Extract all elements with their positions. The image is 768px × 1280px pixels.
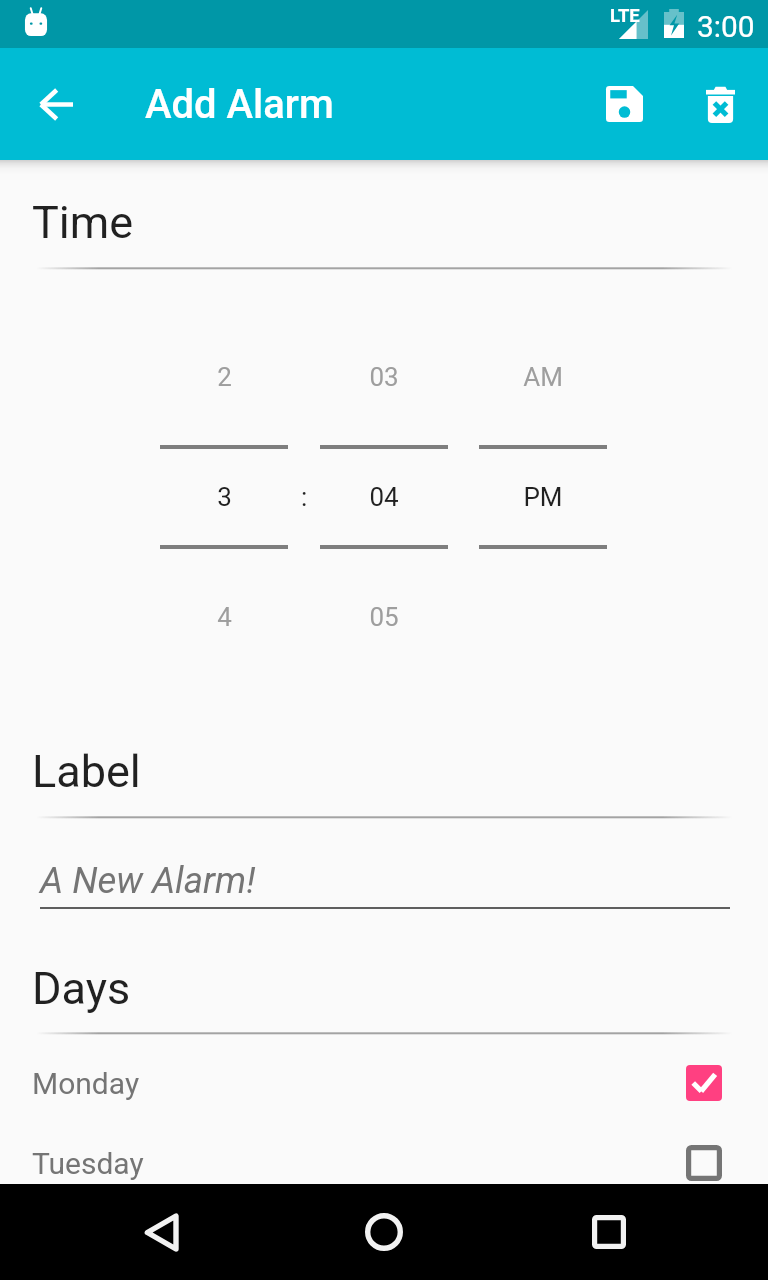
staticText: 2 <box>217 362 232 392</box>
staticText: AM <box>523 362 563 392</box>
staticText: 3 <box>217 482 232 512</box>
button[interactable]: AM <box>479 351 607 403</box>
button[interactable]: Home <box>336 1184 432 1280</box>
button[interactable]: A New Alarm! <box>40 853 730 909</box>
staticText: Time <box>32 196 134 249</box>
button[interactable]: 3 <box>160 471 288 523</box>
button[interactable]: PM <box>479 471 607 523</box>
button[interactable]: Tuesday <box>0 1123 768 1203</box>
button[interactable]: Back <box>28 76 84 132</box>
staticText: PM <box>523 482 563 512</box>
button[interactable]: Monday <box>0 1043 768 1123</box>
staticText: Add Alarm <box>145 81 334 128</box>
staticText: : <box>301 482 308 512</box>
button[interactable]: Delete <box>674 58 766 150</box>
button[interactable]: Back <box>113 1184 209 1280</box>
staticText: 3:00 <box>697 9 755 44</box>
staticText: 05 <box>369 602 399 632</box>
button[interactable]: 03 <box>320 351 448 403</box>
button[interactable]: Save <box>578 58 670 150</box>
button[interactable]: 05 <box>320 591 448 643</box>
staticText: Days <box>32 962 131 1015</box>
staticText: Monday <box>32 1066 140 1101</box>
button[interactable]: Recents <box>561 1184 657 1280</box>
staticText: 04 <box>369 482 399 512</box>
staticText: Label <box>32 745 141 798</box>
staticText: 03 <box>369 362 399 392</box>
staticText: Tuesday <box>32 1146 144 1181</box>
button[interactable]: 2 <box>160 351 288 403</box>
staticText: LTE <box>610 5 640 27</box>
staticText: A New Alarm! <box>40 859 256 902</box>
button[interactable]: 04 <box>320 471 448 523</box>
staticText: 4 <box>217 602 232 632</box>
button[interactable]: 4 <box>160 591 288 643</box>
